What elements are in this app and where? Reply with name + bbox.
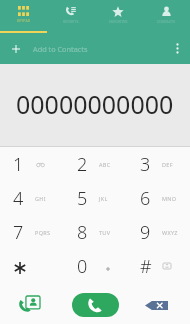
staticText: MNO — [162, 195, 177, 202]
button[interactable]: 2 — [64, 147, 127, 181]
staticText: PQRS — [35, 229, 51, 236]
staticText: RECENTS — [63, 19, 79, 24]
staticText: 00000000000 — [16, 87, 174, 121]
button[interactable]: 7 — [0, 215, 64, 249]
staticText: 1 — [13, 152, 24, 177]
staticText: 6 — [140, 186, 151, 211]
staticText: TUV — [99, 229, 111, 236]
button[interactable]: Add to contacts — [0, 283, 60, 324]
button[interactable]: Favorites — [94, 0, 142, 32]
staticText: 5 — [77, 186, 88, 211]
staticText: WXYZ — [162, 229, 178, 236]
button[interactable]: 0 — [64, 249, 127, 283]
button[interactable]: 6 — [127, 181, 190, 215]
button[interactable] — [0, 249, 64, 283]
staticText: KEYPAD — [17, 18, 31, 23]
staticText: DEF — [162, 161, 173, 168]
staticText: GHI — [35, 195, 46, 202]
button[interactable]: 9 — [127, 215, 190, 249]
staticText: ABC — [99, 161, 111, 168]
button[interactable]: Call — [72, 293, 119, 317]
button[interactable]: 5 — [64, 181, 127, 215]
staticText: CONTACTS — [157, 19, 176, 24]
staticText: Add to Contacts — [33, 44, 88, 54]
button[interactable]: More options — [160, 36, 185, 61]
staticText: 2 — [77, 152, 88, 177]
staticText: 0 — [77, 254, 88, 279]
staticText: 4 — [13, 186, 24, 211]
button[interactable]: 4 — [0, 181, 64, 215]
staticText: JKL — [99, 195, 108, 202]
staticText: 3 — [140, 152, 151, 177]
staticText: 9 — [140, 220, 151, 245]
button[interactable]: Recents — [47, 0, 94, 32]
button[interactable]: Keypad — [0, 0, 47, 32]
button[interactable]: 3 — [127, 147, 190, 181]
staticText: 7 — [13, 220, 24, 245]
staticText: 8 — [77, 220, 88, 245]
button[interactable]: Add to Contacts — [0, 36, 160, 61]
button[interactable]: # — [127, 249, 190, 283]
button[interactable]: Contacts — [142, 0, 190, 32]
staticText: # — [140, 254, 152, 279]
button[interactable]: 8 — [64, 215, 127, 249]
button[interactable]: 1 — [0, 147, 64, 181]
button[interactable]: Backspace — [131, 283, 190, 324]
staticText: FAVORITES — [109, 19, 128, 24]
